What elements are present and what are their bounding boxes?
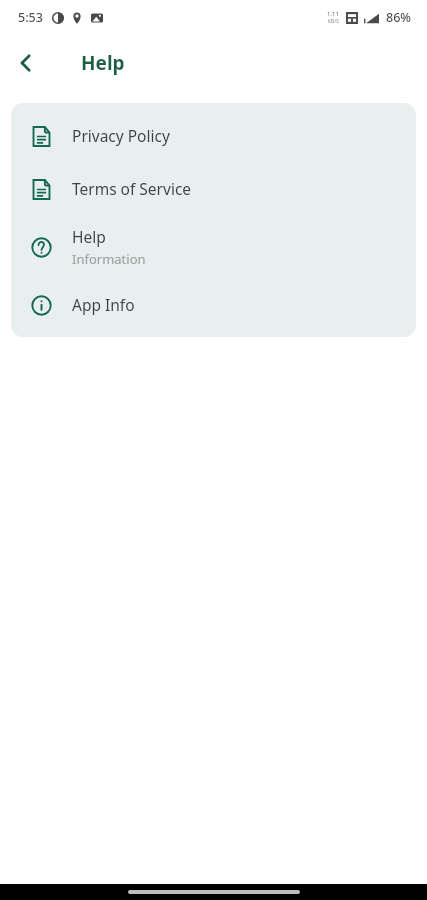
staticText: Help <box>81 50 125 76</box>
staticText: App Info <box>72 294 135 315</box>
button[interactable]: Privacy Policy <box>11 109 416 162</box>
staticText: KB/S <box>328 18 339 25</box>
staticText: Privacy Policy <box>72 125 170 146</box>
staticText: Terms of Service <box>72 178 192 199</box>
button[interactable]: Back <box>6 43 46 83</box>
staticText: Information <box>72 250 146 268</box>
staticText: 5:53 <box>18 9 43 26</box>
staticText: Help <box>72 226 106 247</box>
button[interactable]: Terms of Service <box>11 162 416 215</box>
staticText: 1.11 <box>327 10 339 18</box>
button[interactable]: App Info <box>11 278 416 331</box>
button[interactable]: Help <box>11 215 416 278</box>
staticText: 86% <box>386 9 411 26</box>
